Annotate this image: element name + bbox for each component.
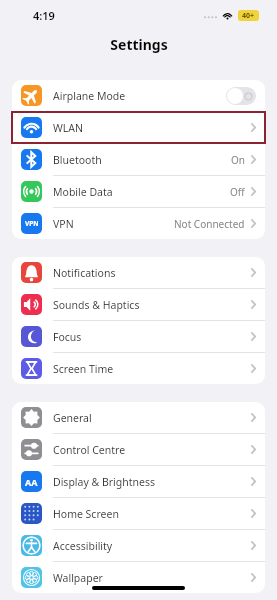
staticText: Home Screen	[53, 507, 119, 521]
staticText: Focus	[53, 330, 82, 344]
button[interactable]: Bluetooth	[12, 144, 265, 175]
button[interactable]: Screen Time	[12, 353, 265, 384]
staticText: 40+	[242, 11, 255, 21]
button[interactable]: Notifications	[12, 257, 265, 288]
staticText: 4:19	[33, 8, 55, 23]
staticText: General	[53, 411, 92, 425]
staticText: Mobile Data	[53, 185, 113, 199]
staticText: On	[231, 153, 245, 167]
button[interactable]: WLAN	[12, 112, 265, 143]
button[interactable]: General	[12, 402, 265, 433]
staticText: Airplane Mode	[53, 89, 126, 103]
button[interactable]: Airplane Mode	[12, 80, 265, 111]
staticText: Wallpaper	[53, 571, 103, 585]
button[interactable]: Airplane Mode toggle	[226, 87, 256, 105]
button[interactable]: Wallpaper	[12, 562, 265, 593]
staticText: Control Centre	[53, 443, 126, 457]
staticText: Display & Brightness	[53, 475, 156, 489]
staticText: AA	[25, 476, 38, 488]
button[interactable]: Sounds & Haptics	[12, 289, 265, 320]
staticText: Screen Time	[53, 362, 114, 376]
staticText: VPN	[53, 217, 74, 231]
staticText: Off	[230, 185, 245, 199]
button[interactable]: Mobile Data	[12, 176, 265, 207]
staticText: VPN	[25, 219, 39, 228]
button[interactable]: Focus	[12, 321, 265, 352]
button[interactable]: AA	[12, 466, 265, 497]
button[interactable]: VPN	[12, 208, 265, 239]
staticText: Sounds & Haptics	[53, 298, 140, 312]
staticText: Accessibility	[53, 539, 113, 553]
staticText: Notifications	[53, 266, 116, 280]
staticText: Not Connected	[174, 217, 245, 231]
button[interactable]: Home Screen	[12, 498, 265, 529]
staticText: Bluetooth	[53, 153, 102, 167]
staticText: WLAN	[53, 121, 83, 135]
button[interactable]: Accessibility	[12, 530, 265, 561]
button[interactable]: Control Centre	[12, 434, 265, 465]
staticText: Settings	[110, 35, 168, 54]
